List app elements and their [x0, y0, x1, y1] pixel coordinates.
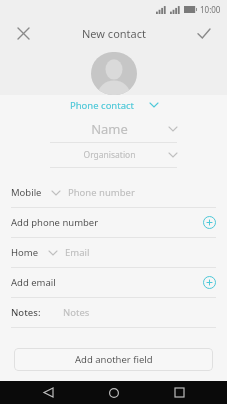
button[interactable]: Phone contact — [0, 95, 227, 115]
button[interactable]: Recent apps — [162, 381, 196, 404]
button[interactable]: Add phone number — [0, 208, 227, 237]
button[interactable]: Home — [97, 381, 131, 404]
button[interactable]: Contact photo — [91, 52, 137, 95]
staticText: Email — [65, 246, 90, 259]
button[interactable]: Home — [0, 238, 227, 267]
button[interactable]: Name — [0, 115, 227, 142]
button[interactable]: Save — [189, 18, 219, 48]
button[interactable]: Notes: — [0, 298, 227, 327]
button[interactable]: Mobile — [0, 178, 227, 207]
staticText: Name — [50, 120, 169, 138]
button[interactable]: Organisation — [0, 143, 227, 167]
button[interactable]: Add another field — [14, 348, 213, 371]
staticText: Notes — [63, 306, 90, 319]
staticText: Mobile — [11, 186, 42, 199]
staticText: Phone contact — [70, 99, 134, 112]
staticText: Home — [11, 246, 39, 259]
staticText: Organisation — [50, 149, 169, 161]
staticText: Notes: — [11, 306, 41, 319]
staticText: Add another field — [75, 353, 153, 366]
staticText: New contact — [82, 26, 146, 41]
staticText: 10:00 — [200, 4, 221, 15]
button[interactable]: Cancel — [8, 18, 38, 48]
staticText: Add phone number — [11, 216, 203, 229]
staticText: Add email — [11, 276, 203, 289]
button[interactable]: Back — [31, 381, 65, 404]
button[interactable]: Add email — [0, 268, 227, 297]
staticText: Phone number — [68, 186, 135, 199]
